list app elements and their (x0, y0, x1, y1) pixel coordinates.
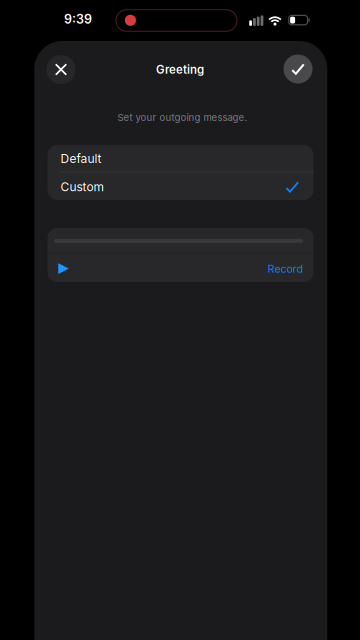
staticText: Set your outgoing message. (117, 112, 247, 123)
staticText: Record (267, 262, 303, 275)
staticText: Default (60, 151, 101, 166)
button[interactable]: Custom (47, 173, 313, 201)
button[interactable]: Record (263, 258, 307, 279)
staticText: 9:39 (64, 12, 92, 27)
staticText: Custom (60, 180, 104, 194)
button[interactable]: Play (50, 257, 76, 281)
button[interactable]: Close (46, 55, 75, 84)
button[interactable]: Done (283, 54, 312, 83)
staticText: Greeting (156, 63, 204, 76)
button[interactable]: Default (47, 145, 313, 172)
